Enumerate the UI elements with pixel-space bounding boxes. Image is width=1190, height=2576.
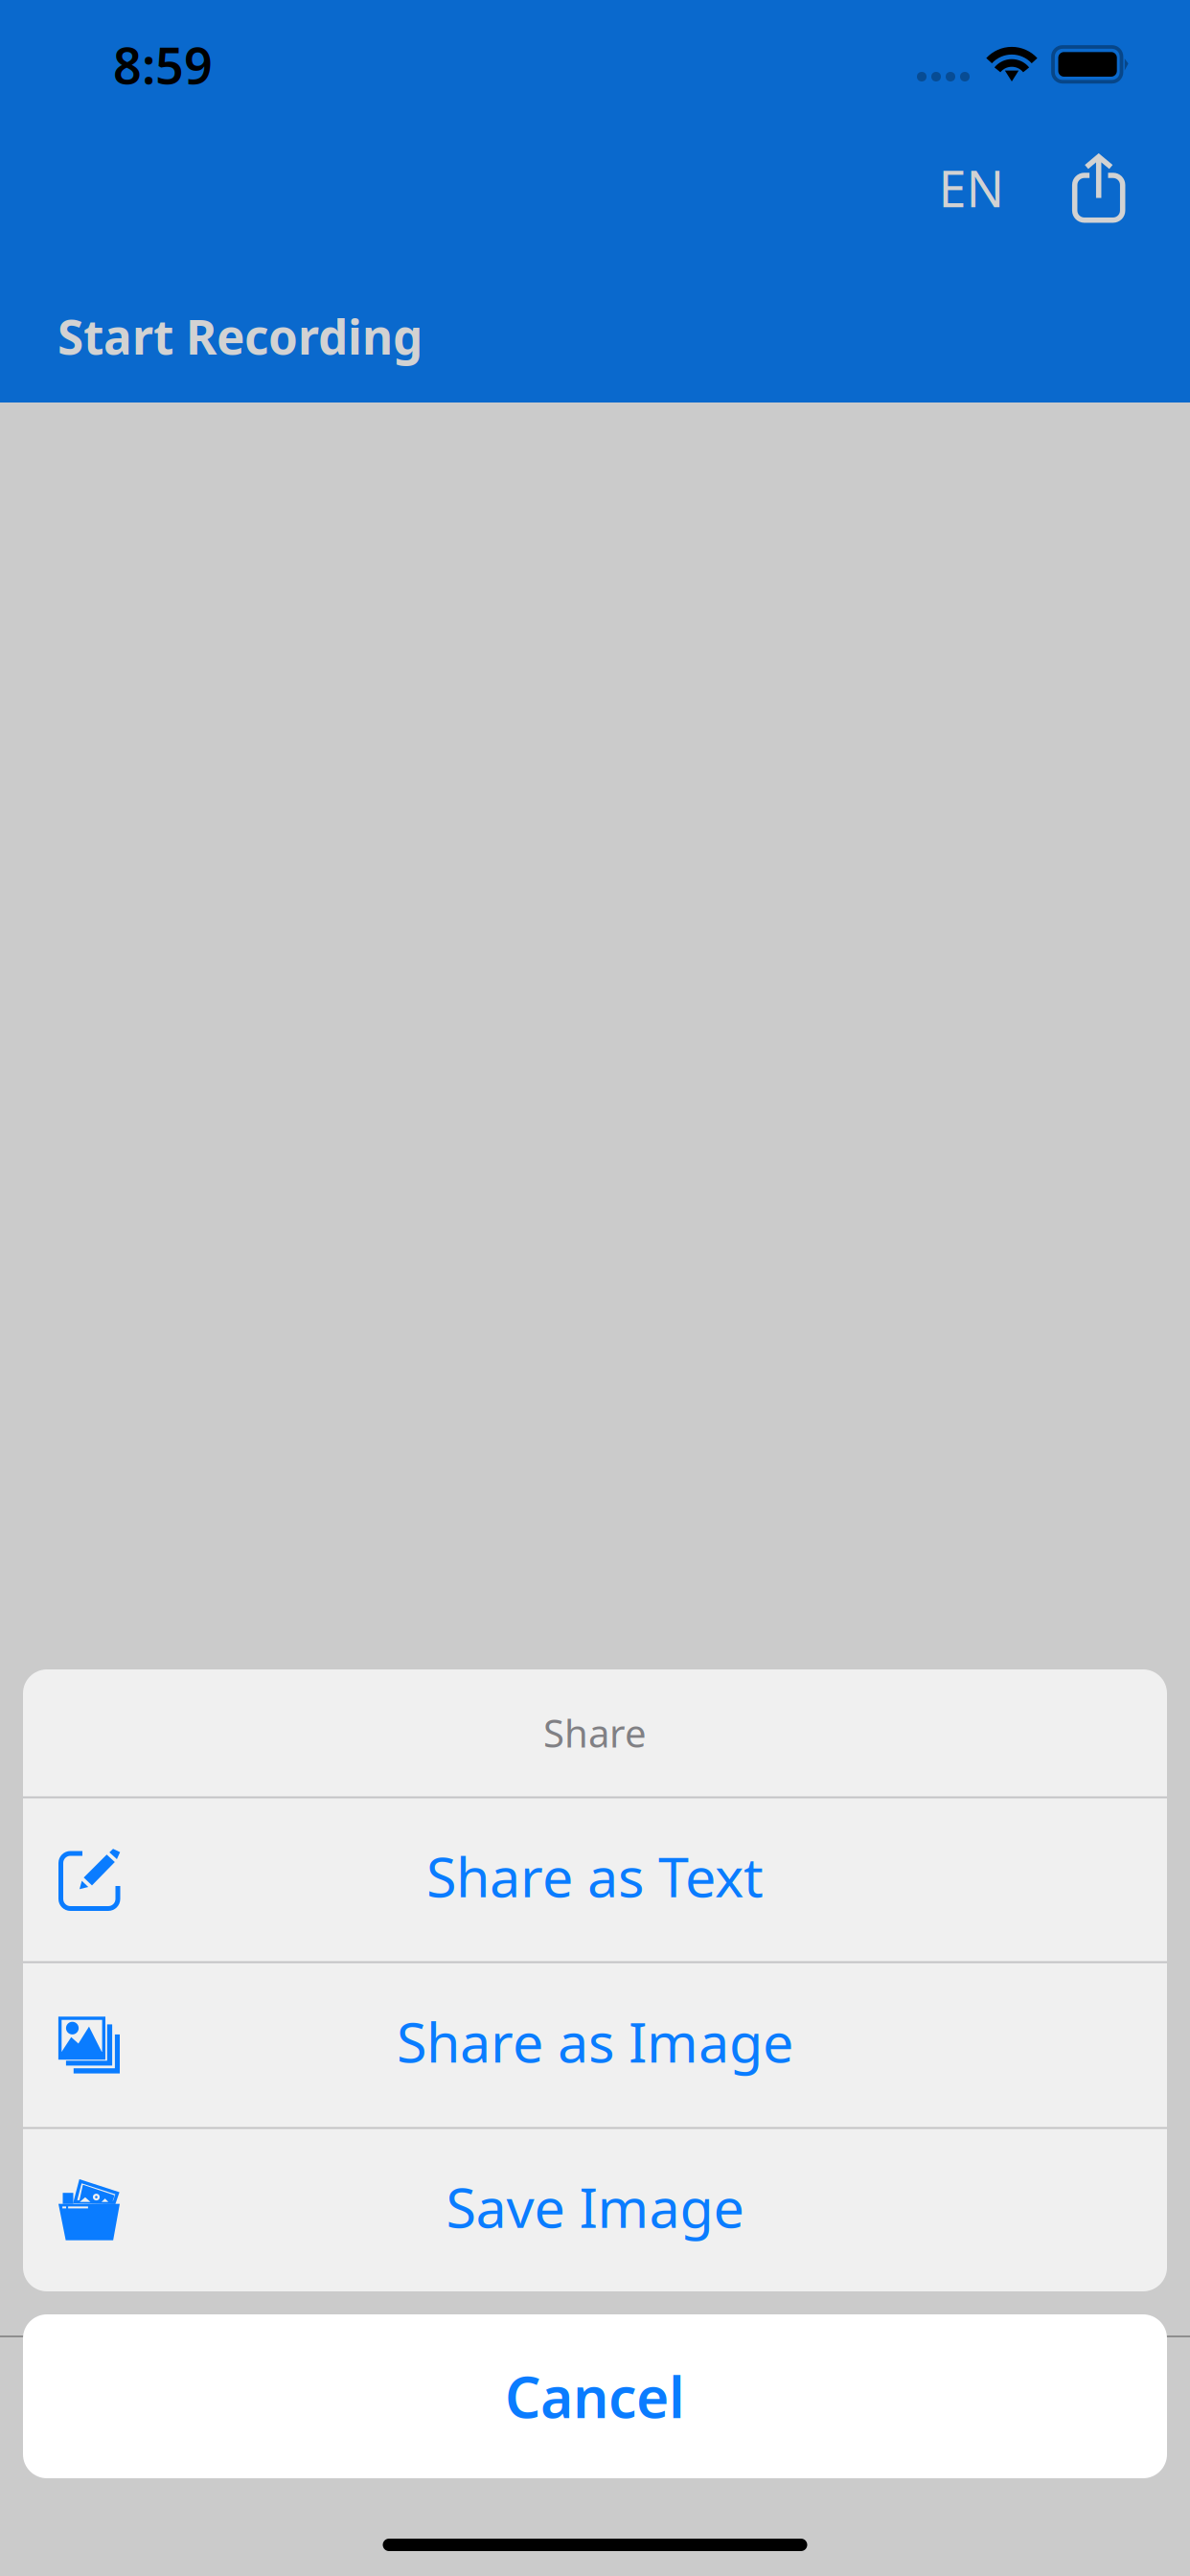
- staticText: Save Image: [446, 2170, 744, 2243]
- staticText: EN: [938, 155, 1005, 221]
- button[interactable]: Share as Image: [23, 1963, 1167, 2127]
- staticText: Share as Text: [426, 1839, 764, 1912]
- staticText: Share: [543, 1707, 647, 1758]
- button[interactable]: Share: [1051, 139, 1147, 239]
- staticText: 8:59: [113, 32, 213, 98]
- button[interactable]: Cancel: [23, 2314, 1167, 2478]
- button[interactable]: Save Image: [23, 2129, 1167, 2292]
- staticText: Share as Image: [397, 2005, 793, 2078]
- button[interactable]: EN: [920, 140, 1023, 236]
- staticText: Start Recording: [57, 305, 423, 368]
- button[interactable]: Share as Text: [23, 1798, 1167, 1961]
- staticText: Cancel: [505, 2359, 685, 2434]
